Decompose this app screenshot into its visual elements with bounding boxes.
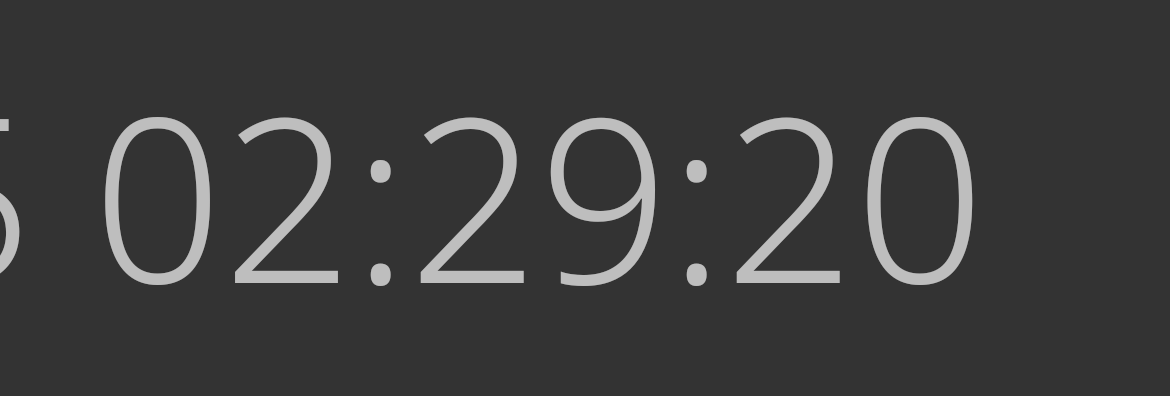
staticText: 5 02:29:20 bbox=[0, 39, 985, 350]
button[interactable]: Elapsed time 02:29:20 bbox=[0, 0, 1170, 396]
